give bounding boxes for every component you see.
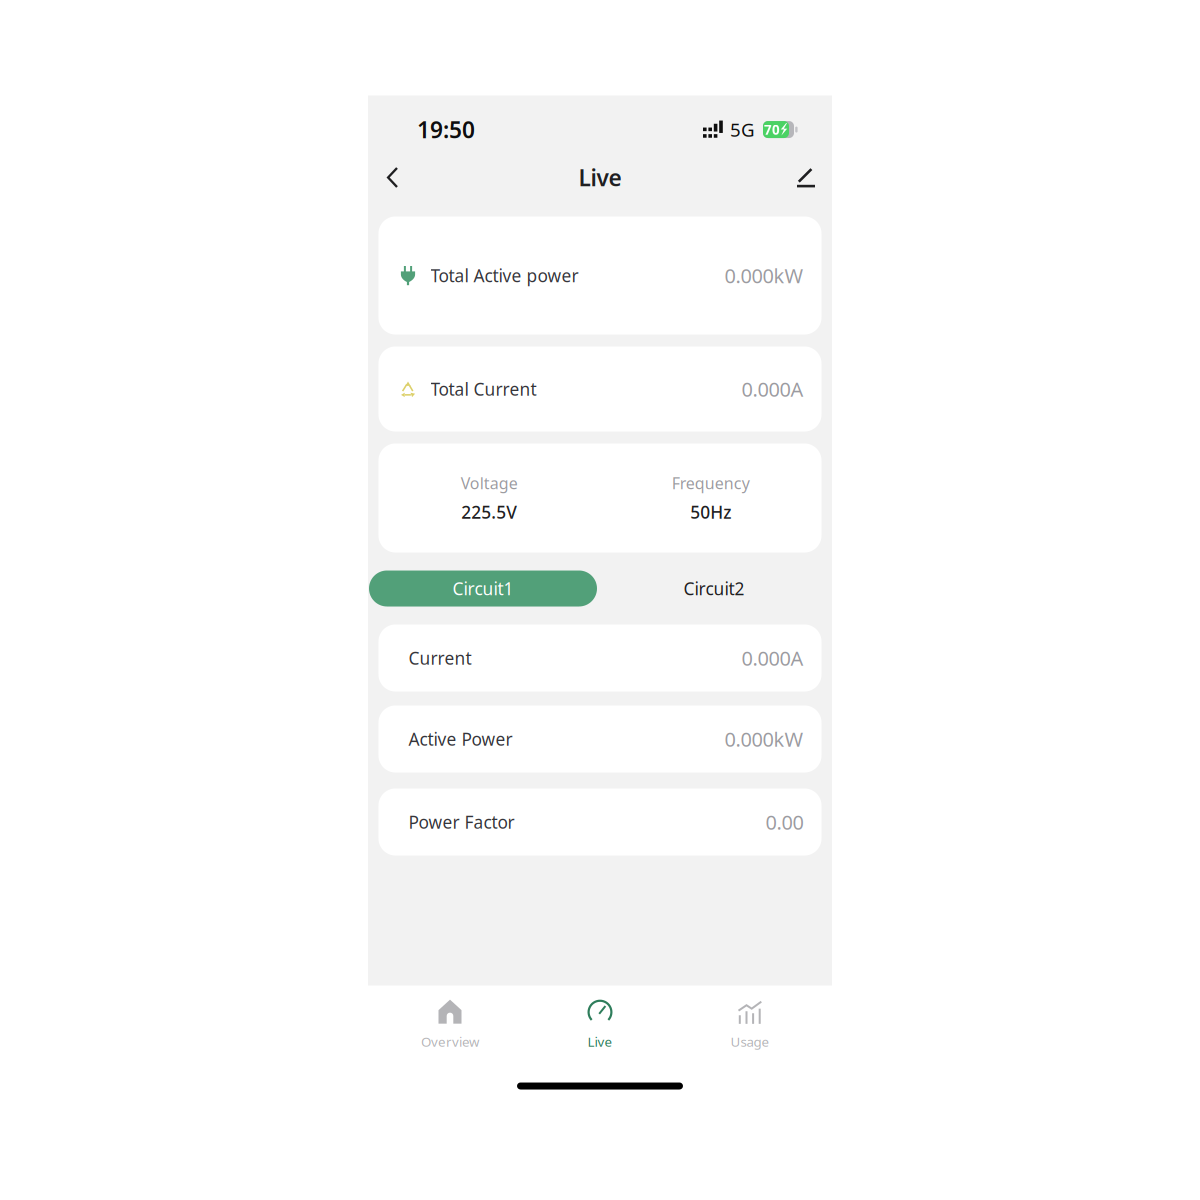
button[interactable]: Circuit2 <box>597 570 831 606</box>
button[interactable]: Usage <box>675 993 825 1055</box>
staticText: Active Power <box>408 727 512 750</box>
staticText: Current <box>408 646 471 669</box>
staticText: Overview <box>421 1033 479 1050</box>
staticText: Frequency <box>672 472 750 494</box>
button[interactable]: Overview <box>375 993 525 1055</box>
staticText: 50Hz <box>690 501 731 524</box>
staticText: Total Active power <box>430 264 578 287</box>
staticText: 0.000kW <box>724 262 803 289</box>
staticText: 0.000A <box>741 376 803 402</box>
button[interactable]: Total Active power <box>378 216 821 334</box>
staticText: Live <box>578 162 621 192</box>
staticText: Usage <box>730 1033 769 1050</box>
staticText: 70 <box>764 121 780 138</box>
staticText: 0.000kW <box>724 726 803 752</box>
button[interactable]: Active Power <box>378 705 821 772</box>
button[interactable]: Edit <box>773 155 817 199</box>
staticText: Total Current <box>430 377 536 400</box>
staticText: 19:50 <box>417 114 475 145</box>
staticText: Voltage <box>461 472 518 494</box>
button[interactable]: Live <box>525 993 675 1055</box>
button[interactable]: Back <box>386 155 430 199</box>
staticText: Live <box>587 1033 612 1050</box>
staticText: 0.000A <box>741 645 803 671</box>
button[interactable]: Total Current <box>378 346 821 431</box>
staticText: Circuit1 <box>452 577 513 600</box>
staticText: 5G <box>730 117 755 142</box>
staticText: 225.5V <box>461 501 517 524</box>
staticText: Power Factor <box>408 810 514 833</box>
button[interactable]: Current <box>378 624 821 691</box>
button[interactable]: Power Factor <box>378 788 821 855</box>
button[interactable]: Circuit1 <box>369 570 597 606</box>
staticText: 0.00 <box>765 809 803 835</box>
staticText: Circuit2 <box>683 577 744 600</box>
